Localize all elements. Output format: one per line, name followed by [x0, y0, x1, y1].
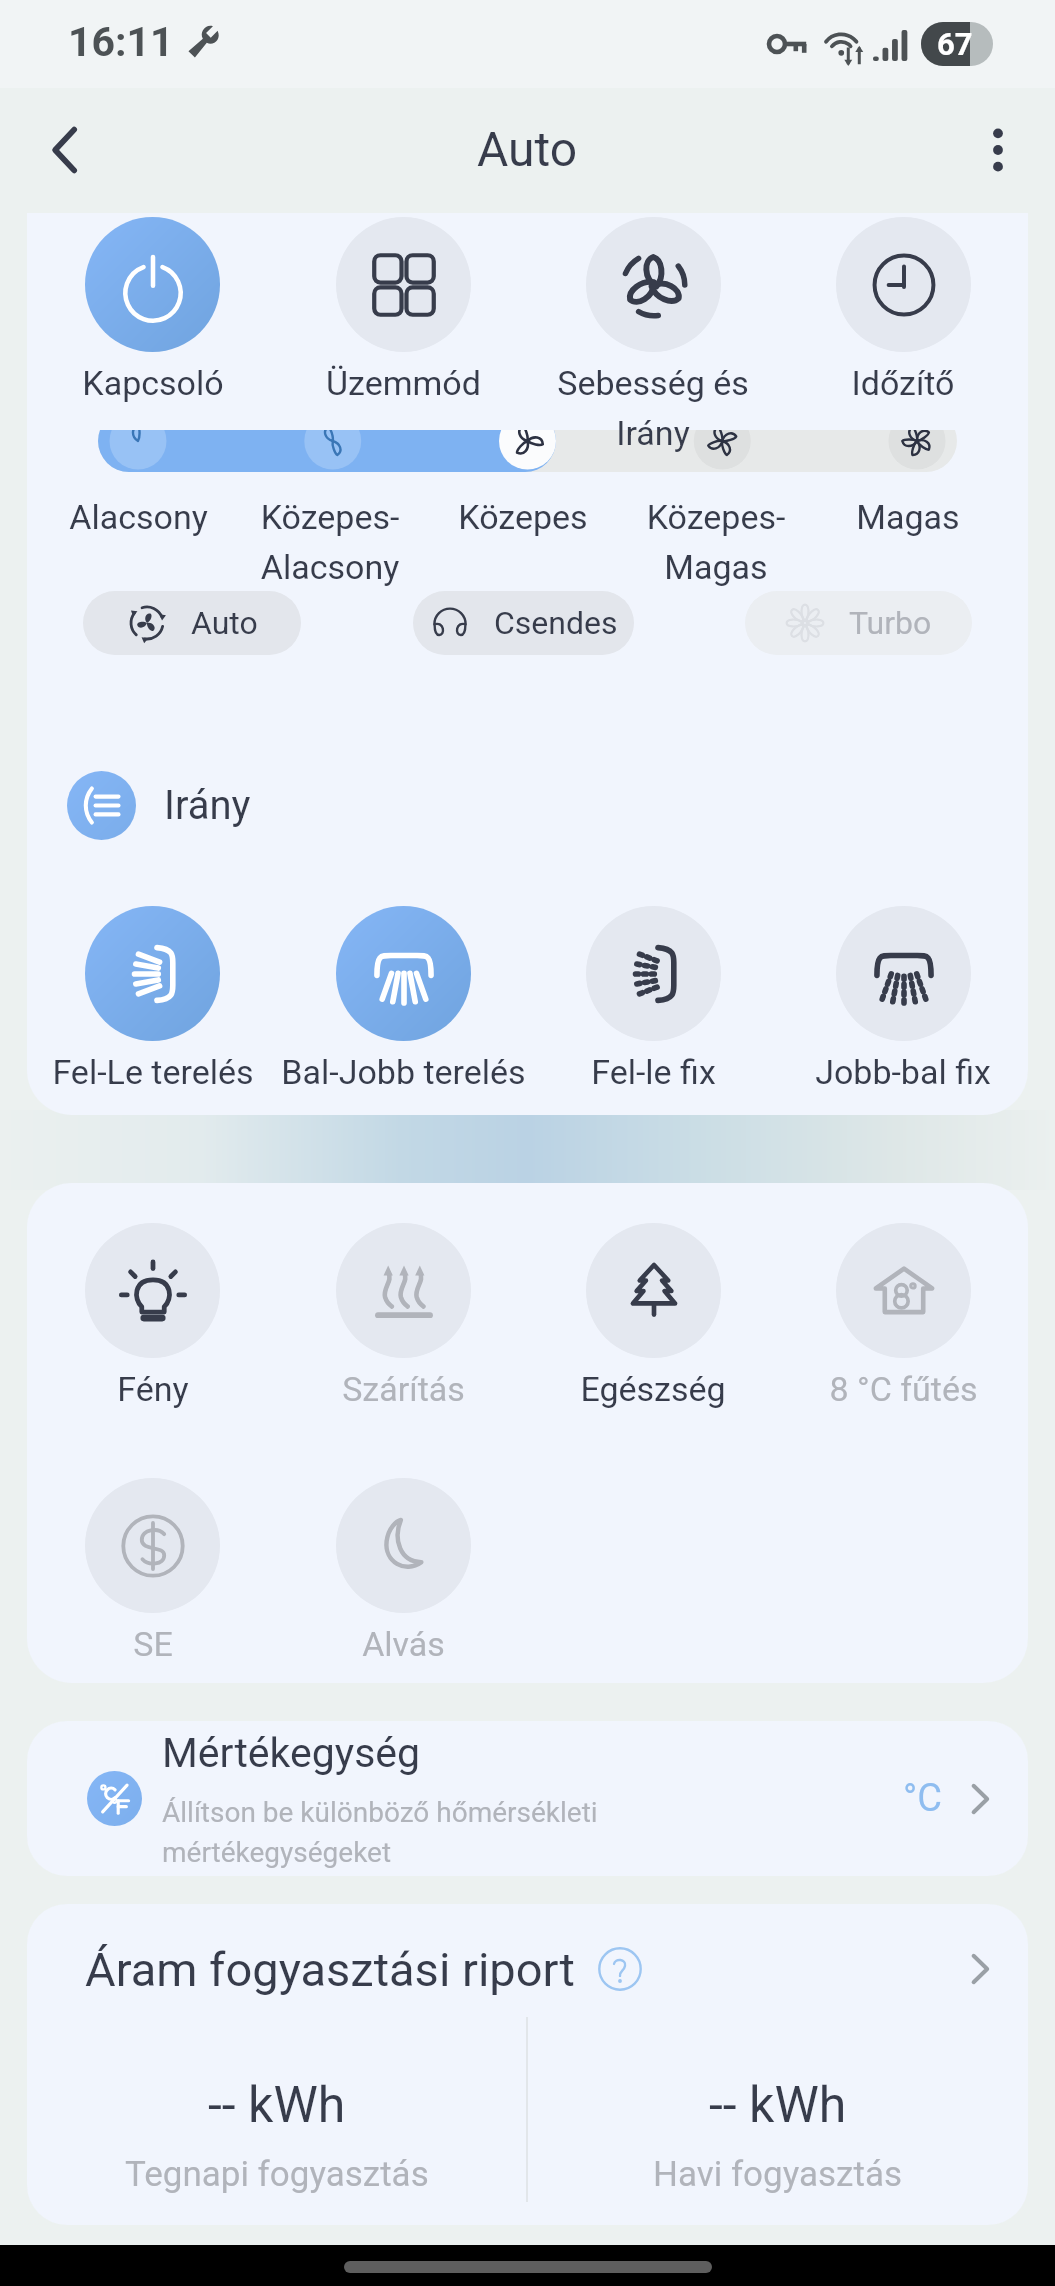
staticText: Állítson be különböző hőmérsékleti mérté…: [162, 1796, 598, 1869]
button[interactable]: Turbo: [745, 591, 972, 655]
staticText: -- kWh: [208, 2076, 346, 2135]
staticText: Áram fogyasztási riport: [85, 1942, 575, 1997]
button[interactable]: Jobb-bal fix: [778, 906, 1028, 1092]
button[interactable]: Egészség: [528, 1223, 778, 1409]
staticText: Alacsony: [69, 497, 208, 537]
staticText: Turbo: [849, 604, 932, 642]
staticText: °C: [903, 1776, 942, 1821]
button[interactable]: Kapcsoló: [27, 217, 278, 403]
button[interactable]: Sebesség és Irány: [528, 217, 778, 453]
staticText: Magas: [856, 497, 960, 537]
button[interactable]: Időzítő: [778, 217, 1028, 403]
button[interactable]: Üzemmód: [278, 217, 528, 403]
staticText: Csendes: [494, 604, 618, 642]
staticText: Közepes: [458, 497, 588, 537]
button[interactable]: Fel-le fix: [528, 906, 778, 1092]
button[interactable]: Auto: [83, 591, 301, 655]
button[interactable]: Fan speed: [27, 430, 1028, 472]
staticText: Fel-le fix: [591, 1052, 716, 1092]
staticText: 67: [937, 26, 973, 62]
staticText: Jobb-bal fix: [815, 1052, 991, 1092]
staticText: Közepes-Alacsony: [220, 497, 440, 587]
staticText: Fény: [117, 1369, 189, 1409]
staticText: Alvás: [362, 1624, 445, 1664]
staticText: Bal-Jobb terelés: [281, 1052, 526, 1092]
button[interactable]: Fény: [27, 1223, 278, 1409]
button[interactable]: Fel-Le terelés: [27, 906, 278, 1092]
staticText: SE: [133, 1624, 173, 1664]
button[interactable]: Back: [32, 116, 100, 184]
button[interactable]: Bal-Jobb terelés: [278, 906, 528, 1092]
staticText: Fel-Le terelés: [52, 1052, 254, 1092]
staticText: 8 °C fűtés: [829, 1369, 978, 1409]
button[interactable]: More options: [964, 116, 1032, 184]
staticText: Szárítás: [342, 1369, 465, 1409]
staticText: Tegnapi fogyasztás: [125, 2154, 429, 2195]
button[interactable]: Csendes: [413, 591, 634, 655]
button[interactable]: Alvás: [278, 1478, 528, 1664]
staticText: Közepes-Magas: [606, 497, 826, 587]
staticText: 16:11: [68, 18, 174, 66]
staticText: Üzemmód: [326, 363, 481, 403]
button[interactable]: Mértékegység: [27, 1721, 1028, 1876]
staticText: Mértékegység: [162, 1729, 421, 1777]
staticText: Kapcsoló: [82, 363, 224, 403]
staticText: Irány: [164, 782, 251, 829]
staticText: -- kWh: [709, 2076, 847, 2135]
button[interactable]: SE: [27, 1478, 278, 1664]
staticText: Havi fogyasztás: [653, 2154, 902, 2195]
staticText: Auto: [191, 604, 258, 642]
staticText: Egészség: [580, 1369, 726, 1409]
button[interactable]: 8 °C fűtés: [778, 1223, 1028, 1409]
button[interactable]: Szárítás: [278, 1223, 528, 1409]
staticText: Sebesség és Irány: [557, 363, 749, 453]
staticText: Időzítő: [851, 363, 955, 403]
staticText: Auto: [477, 121, 578, 177]
button[interactable]: Áram fogyasztási riport: [27, 1904, 1028, 2034]
